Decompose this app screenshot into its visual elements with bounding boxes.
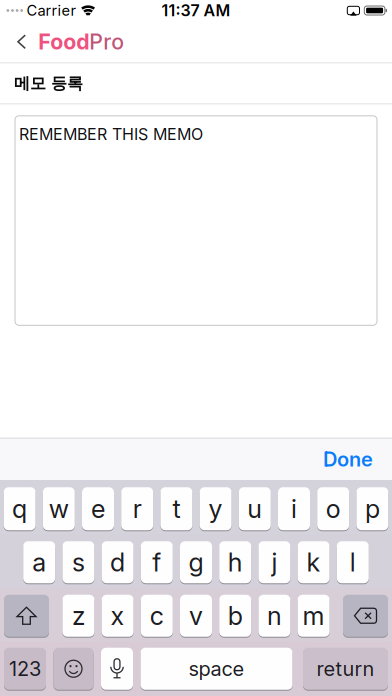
button[interactable]: a <box>23 541 55 583</box>
staticText: 메모 등록 <box>14 74 83 93</box>
button[interactable]: n <box>258 595 290 637</box>
staticText: p <box>365 494 380 524</box>
staticText: t <box>172 494 180 524</box>
staticText: z <box>72 601 85 631</box>
button[interactable]: j <box>258 541 290 583</box>
staticText: l <box>350 547 356 577</box>
staticText: q <box>12 494 27 524</box>
staticText: 123 <box>9 657 41 681</box>
button[interactable]: m <box>298 595 330 637</box>
staticText: m <box>303 601 325 631</box>
staticText: n <box>267 601 282 631</box>
button[interactable]: z <box>62 595 94 637</box>
button[interactable]: q <box>4 487 36 530</box>
button[interactable]: space <box>140 648 292 690</box>
button[interactable]: g <box>180 541 212 583</box>
button[interactable]: REMEMBER THIS MEMO <box>15 116 377 325</box>
staticText: o <box>326 494 341 524</box>
button[interactable]: o <box>317 487 349 530</box>
button[interactable]: b <box>219 595 251 637</box>
staticText: k <box>307 547 321 577</box>
staticText: u <box>247 494 262 524</box>
button[interactable]: x <box>102 595 134 637</box>
button[interactable] <box>53 648 93 690</box>
staticText: w <box>49 494 69 524</box>
button[interactable]: Done <box>323 447 392 471</box>
button[interactable]: return <box>303 648 388 690</box>
button[interactable] <box>343 595 388 637</box>
button[interactable]: k <box>298 541 330 583</box>
staticText: j <box>271 547 277 577</box>
staticText: space <box>188 657 244 681</box>
staticText: s <box>72 547 85 577</box>
staticText: Pro <box>89 29 124 54</box>
button[interactable]: s <box>62 541 94 583</box>
button[interactable]: h <box>219 541 251 583</box>
button[interactable]: p <box>356 487 388 530</box>
staticText: b <box>228 601 243 631</box>
button[interactable]: y <box>200 487 232 530</box>
staticText: return <box>316 657 374 681</box>
staticText: Carrier <box>27 2 77 19</box>
staticText: v <box>189 601 203 631</box>
button[interactable]: u <box>239 487 271 530</box>
button[interactable] <box>0 35 31 48</box>
staticText: c <box>150 601 164 631</box>
staticText: a <box>32 547 46 577</box>
staticText: i <box>291 494 297 524</box>
staticText: REMEMBER THIS MEMO <box>19 125 203 144</box>
button[interactable]: r <box>121 487 153 530</box>
button[interactable]: w <box>43 487 75 530</box>
button[interactable]: l <box>337 541 369 583</box>
button[interactable] <box>4 595 49 637</box>
staticText: r <box>133 494 142 524</box>
staticText: h <box>228 547 243 577</box>
staticText: e <box>91 494 105 524</box>
button[interactable]: i <box>278 487 310 530</box>
button[interactable]: e <box>82 487 114 530</box>
button[interactable]: d <box>102 541 134 583</box>
button[interactable]: f <box>141 541 173 583</box>
staticText: d <box>110 547 125 577</box>
staticText: y <box>209 494 223 524</box>
staticText: g <box>188 547 203 577</box>
staticText: 11:37 AM <box>161 1 230 20</box>
staticText: Done <box>323 447 373 471</box>
staticText: f <box>152 547 161 577</box>
staticText: Food <box>38 29 89 54</box>
staticText: x <box>111 601 125 631</box>
button[interactable]: 123 <box>4 648 46 690</box>
button[interactable]: t <box>160 487 192 530</box>
button[interactable]: c <box>141 595 173 637</box>
button[interactable]: v <box>180 595 212 637</box>
button[interactable] <box>101 648 133 690</box>
